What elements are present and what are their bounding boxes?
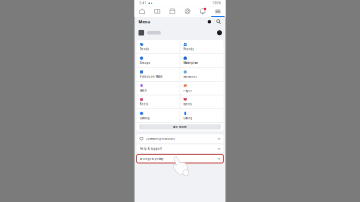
staticText: Saved — [140, 89, 147, 92]
button[interactable]: Menu — [210, 6, 225, 17]
staticText: 5:41 — [139, 1, 147, 5]
button[interactable]: Community resources — [136, 134, 223, 143]
button[interactable]: Marketplace — [180, 54, 223, 67]
button[interactable]: Home — [134, 6, 150, 17]
button[interactable]: Reels — [137, 95, 180, 109]
staticText: Community resources — [145, 137, 174, 140]
button[interactable]: Events — [180, 95, 223, 109]
staticText: Trends — [140, 47, 149, 51]
staticText: Menu — [138, 19, 150, 24]
staticText: Reels — [140, 102, 148, 106]
button[interactable]: Help & support — [136, 144, 223, 153]
staticText: Gaming — [140, 116, 150, 120]
button[interactable]: Video — [150, 6, 165, 17]
button[interactable]: Saved — [137, 81, 180, 95]
staticText: Help & support — [140, 147, 162, 150]
button[interactable]: Settings & privacy — [136, 154, 223, 163]
staticText: Friends — [183, 47, 193, 51]
button[interactable]: Trends — [137, 40, 180, 53]
button[interactable]: Pages — [180, 81, 223, 95]
button[interactable]: Memories — [180, 68, 223, 81]
staticText: See more — [173, 125, 187, 129]
button[interactable]: Videos on Watch — [137, 68, 180, 81]
button[interactable] — [134, 26, 225, 39]
staticText: 100% — [212, 1, 220, 5]
button[interactable]: Groups — [180, 6, 195, 17]
staticText: Events — [183, 102, 191, 106]
button[interactable]: Groups — [137, 54, 180, 67]
button[interactable]: Friends — [180, 40, 223, 53]
staticText: Marketplace — [183, 61, 198, 65]
button[interactable]: Settings — [206, 19, 213, 25]
button[interactable]: See more — [139, 124, 221, 130]
staticText: Groups — [140, 61, 150, 65]
staticText: Pages — [183, 89, 191, 92]
button[interactable]: Gaming — [137, 109, 180, 122]
staticText: Settings & privacy — [140, 157, 163, 160]
staticText: Dating — [183, 116, 192, 120]
button[interactable]: Notifications — [195, 6, 210, 17]
staticText: Videos on Watch — [140, 75, 163, 78]
button[interactable]: Marketplace — [165, 6, 180, 17]
button[interactable]: Search — [216, 19, 222, 25]
button[interactable]: Dating — [180, 109, 223, 122]
staticText: Memories — [183, 75, 196, 78]
